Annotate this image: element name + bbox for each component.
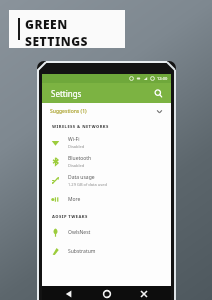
staticText: SETTINGS — [25, 33, 89, 49]
button[interactable]: OwlsNest — [42, 223, 171, 242]
staticText: AOSIP TWEAKS — [52, 214, 88, 219]
button[interactable]: Recent apps — [134, 286, 154, 300]
button[interactable]: Data usage — [42, 171, 171, 190]
staticText: 1.29 GB of data used — [68, 182, 107, 187]
staticText: Data usage — [68, 174, 95, 181]
button[interactable]: Home — [97, 286, 117, 300]
staticText: More — [68, 196, 81, 203]
staticText: Substratum — [68, 248, 96, 255]
button[interactable]: More — [42, 190, 171, 209]
staticText: Bluetooth — [68, 155, 92, 162]
button[interactable]: Back — [59, 286, 79, 300]
staticText: 12:00 — [157, 76, 168, 81]
button[interactable]: Search — [152, 87, 165, 100]
button[interactable]: Bluetooth — [42, 152, 171, 171]
staticText: WIRELESS & NETWORKS — [52, 124, 109, 129]
staticText: OwlsNest — [68, 229, 91, 236]
button[interactable]: Suggestions (1) — [42, 103, 171, 119]
staticText: Disabled — [68, 163, 85, 168]
staticText: Settings — [51, 88, 82, 99]
staticText: Wi-Fi — [68, 136, 80, 143]
button[interactable]: Substratum — [42, 242, 171, 261]
staticText: GREEN — [25, 16, 68, 32]
staticText: Disabled — [68, 144, 85, 149]
staticText: Suggestions (1) — [50, 108, 87, 115]
button[interactable]: Wi-Fi — [42, 133, 171, 152]
